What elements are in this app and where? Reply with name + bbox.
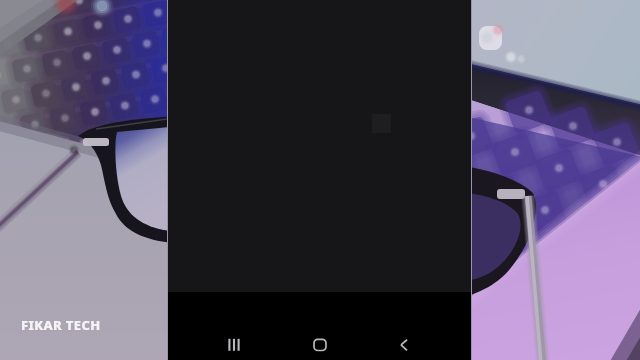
button[interactable]: Back bbox=[370, 312, 438, 360]
button[interactable]: Recent apps bbox=[200, 312, 268, 360]
staticText: FIKAR TECH bbox=[21, 316, 101, 334]
button[interactable]: Home bbox=[286, 312, 354, 360]
